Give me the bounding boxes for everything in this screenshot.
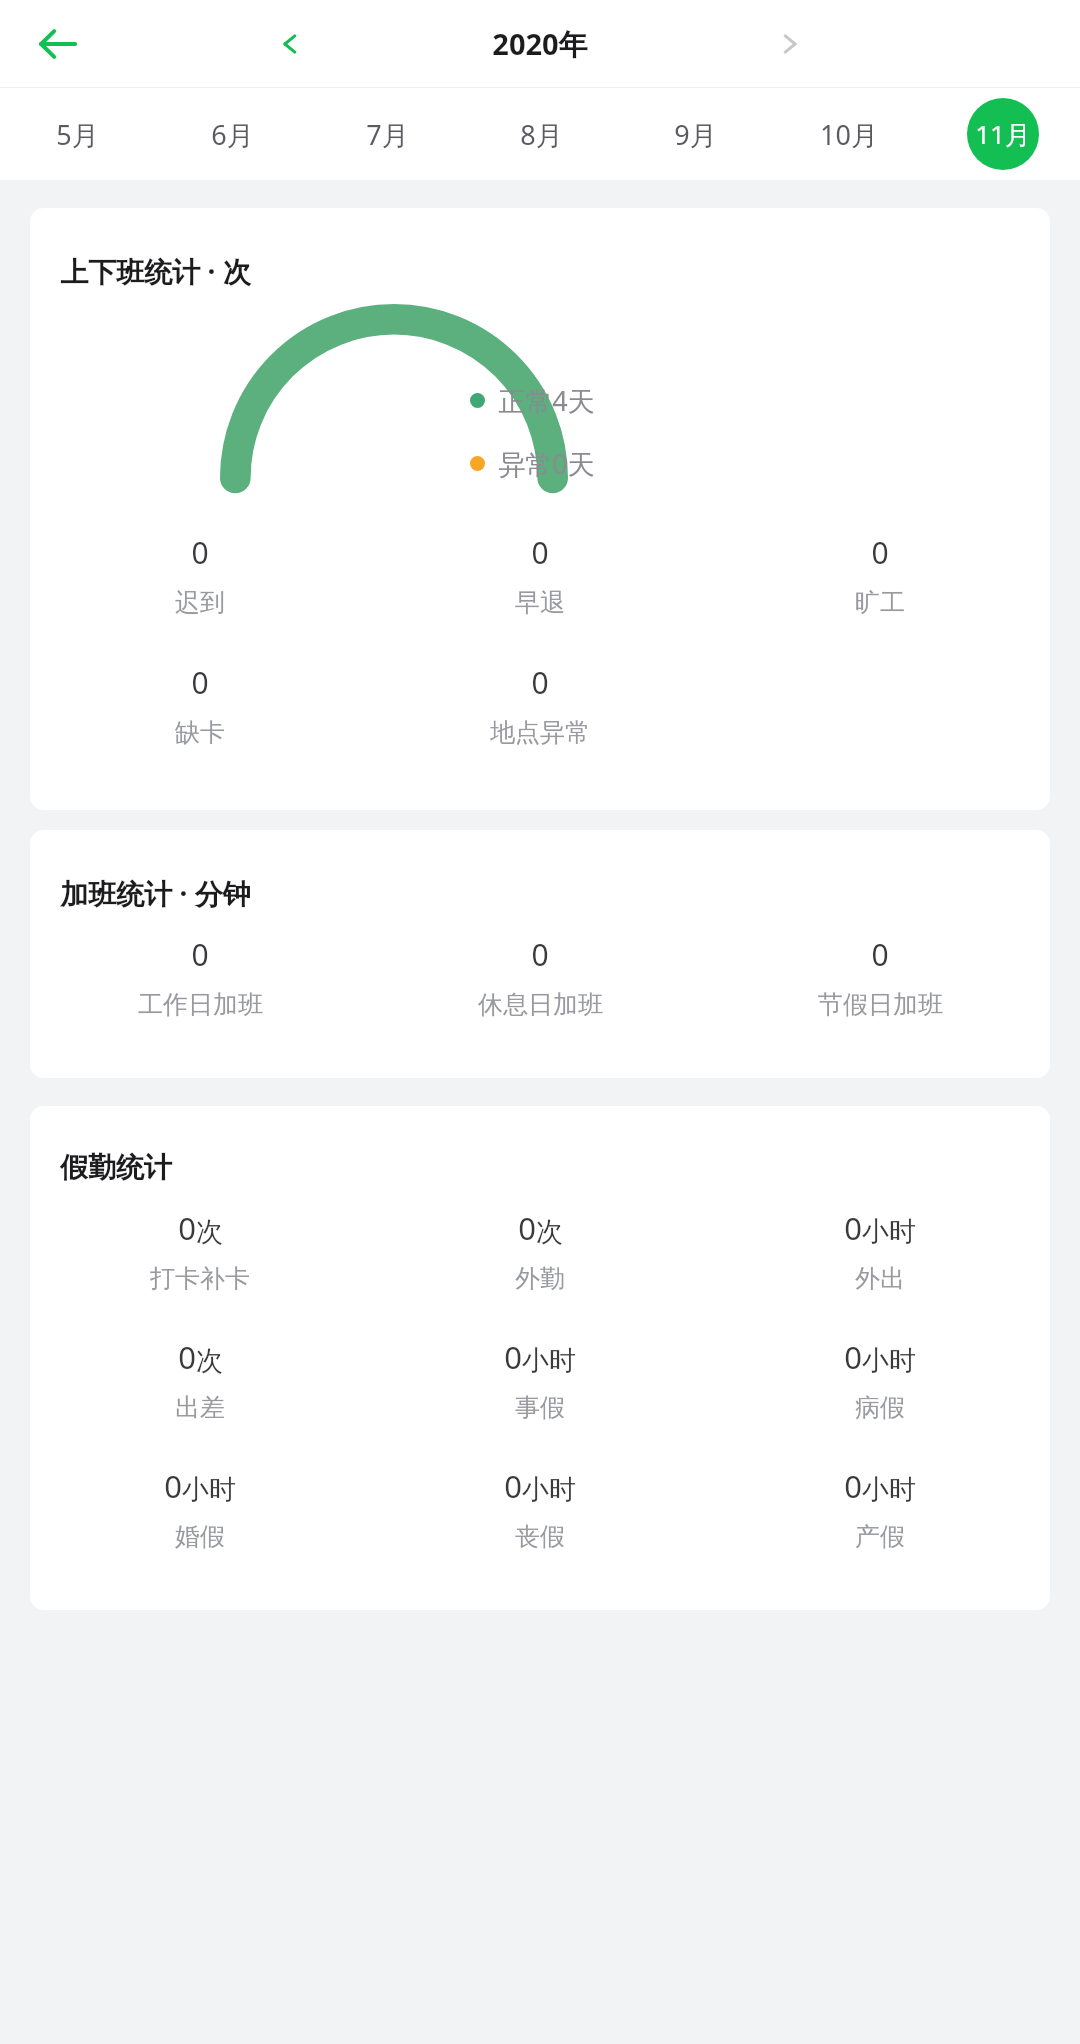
- staticText: 打卡补卡: [150, 1263, 250, 1294]
- staticText: 小时: [522, 1473, 576, 1507]
- staticText: 缺卡: [175, 717, 225, 748]
- staticText: 2020年: [492, 24, 588, 64]
- button[interactable]: Previous year: [248, 2, 332, 86]
- button[interactable]: 上下班统计 · 次: [30, 208, 1050, 810]
- staticText: 0: [504, 1465, 522, 1507]
- button[interactable]: 0: [370, 1465, 710, 1552]
- staticText: 小时: [522, 1344, 576, 1378]
- staticText: 0: [504, 1336, 522, 1378]
- button[interactable]: 0: [370, 1336, 710, 1423]
- staticText: 丧假: [515, 1521, 565, 1552]
- button[interactable]: 0: [710, 934, 1050, 1020]
- staticText: 小时: [862, 1215, 916, 1249]
- button[interactable]: 加班统计 · 分钟: [30, 830, 1050, 1078]
- staticText: 0: [844, 1207, 862, 1249]
- staticText: 工作日加班: [138, 989, 263, 1020]
- staticText: 假勤统计: [60, 1150, 172, 1185]
- button[interactable]: 0: [710, 1465, 1050, 1552]
- staticText: 加班统计 · 分钟: [60, 874, 251, 912]
- staticText: 地点异常: [490, 717, 590, 748]
- button[interactable]: 0: [30, 1465, 370, 1552]
- button[interactable]: 5月: [0, 88, 155, 180]
- button[interactable]: 0: [710, 1336, 1050, 1423]
- staticText: 小时: [862, 1344, 916, 1378]
- button[interactable]: 10月: [772, 88, 926, 180]
- staticText: 婚假: [175, 1521, 225, 1552]
- staticText: 产假: [855, 1521, 905, 1552]
- staticText: 异常0天: [498, 445, 595, 482]
- staticText: 外勤: [515, 1263, 565, 1294]
- staticText: 0: [531, 934, 549, 975]
- button[interactable]: 0: [30, 1336, 370, 1423]
- staticText: 次: [536, 1215, 563, 1249]
- button[interactable]: 7月: [310, 88, 464, 180]
- staticText: 上下班统计 · 次: [60, 252, 251, 290]
- staticText: 11月: [975, 116, 1031, 152]
- staticText: 0: [531, 662, 549, 703]
- staticText: 0: [191, 532, 209, 573]
- staticText: 次: [196, 1215, 223, 1249]
- staticText: 0: [178, 1336, 196, 1378]
- staticText: 0: [164, 1465, 182, 1507]
- button[interactable]: 8月: [464, 88, 618, 180]
- button[interactable]: 0: [370, 1207, 710, 1294]
- button[interactable]: 0: [370, 934, 710, 1020]
- staticText: 正常4天: [498, 382, 595, 419]
- staticText: 早退: [515, 587, 565, 618]
- staticText: 0: [871, 934, 889, 975]
- staticText: 迟到: [175, 587, 225, 618]
- button[interactable]: 0: [30, 662, 370, 748]
- button[interactable]: 0: [30, 532, 370, 618]
- staticText: 休息日加班: [478, 989, 603, 1020]
- staticText: 0: [844, 1465, 862, 1507]
- button[interactable]: 0: [710, 1207, 1050, 1294]
- button[interactable]: 0: [370, 662, 710, 748]
- button[interactable]: 假勤统计: [30, 1106, 1050, 1610]
- button[interactable]: Back: [14, 0, 102, 88]
- staticText: 出差: [175, 1392, 225, 1423]
- staticText: 0: [191, 934, 209, 975]
- button[interactable]: 6月: [155, 88, 310, 180]
- staticText: 旷工: [855, 587, 905, 618]
- staticText: 外出: [855, 1263, 905, 1294]
- staticText: 7月: [366, 116, 409, 153]
- staticText: 节假日加班: [818, 989, 943, 1020]
- button[interactable]: 0: [710, 532, 1050, 618]
- staticText: 0: [871, 532, 889, 573]
- staticText: 10月: [820, 116, 878, 153]
- staticText: 6月: [211, 116, 254, 153]
- staticText: 事假: [515, 1392, 565, 1423]
- staticText: 0: [191, 662, 209, 703]
- button[interactable]: 0: [370, 532, 710, 618]
- button[interactable]: 11月: [926, 88, 1080, 180]
- button[interactable]: 0: [30, 1207, 370, 1294]
- button[interactable]: Next year: [748, 2, 832, 86]
- staticText: 8月: [520, 116, 563, 153]
- staticText: 0: [518, 1207, 536, 1249]
- staticText: 小时: [182, 1473, 236, 1507]
- staticText: 0: [178, 1207, 196, 1249]
- staticText: 次: [196, 1344, 223, 1378]
- staticText: 0: [531, 532, 549, 573]
- staticText: 病假: [855, 1392, 905, 1423]
- button[interactable]: 9月: [618, 88, 772, 180]
- staticText: 9月: [674, 116, 717, 153]
- staticText: 小时: [862, 1473, 916, 1507]
- staticText: 0: [844, 1336, 862, 1378]
- staticText: 5月: [56, 116, 99, 153]
- button[interactable]: 0: [30, 934, 370, 1020]
